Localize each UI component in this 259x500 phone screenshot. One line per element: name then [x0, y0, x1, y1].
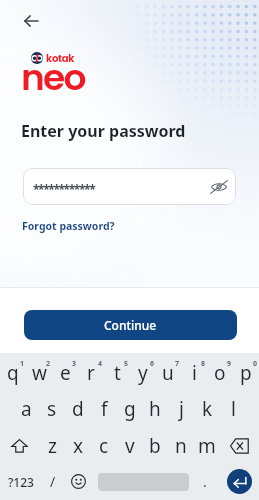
button[interactable]: ************ — [23, 168, 236, 205]
button[interactable]: h — [142, 390, 168, 427]
staticText: Enter your password — [21, 120, 186, 142]
staticText: b — [149, 433, 161, 459]
button[interactable]: / — [42, 463, 63, 500]
staticText: / — [50, 472, 56, 491]
button[interactable]: Enter — [219, 463, 259, 500]
staticText: o — [214, 360, 226, 386]
staticText: 9 — [227, 359, 232, 369]
button[interactable]: k — [194, 390, 220, 427]
button[interactable]: t — [104, 354, 130, 391]
staticText: u — [162, 360, 174, 386]
staticText: 5 — [124, 359, 129, 369]
button[interactable]: z — [39, 427, 65, 464]
staticText: f — [101, 396, 108, 422]
button[interactable]: s — [39, 390, 65, 427]
staticText: 6 — [150, 359, 155, 369]
staticText: g — [124, 396, 136, 422]
button[interactable]: Shift — [0, 427, 39, 464]
staticText: j — [179, 396, 184, 422]
staticText: l — [231, 396, 236, 422]
staticText: 3 — [72, 359, 77, 369]
button[interactable]: f — [91, 390, 117, 427]
button[interactable]: . — [194, 463, 215, 500]
staticText: 1 — [20, 359, 25, 369]
staticText: . — [203, 472, 207, 491]
button[interactable]: x — [65, 427, 91, 464]
button[interactable]: l — [220, 390, 246, 427]
staticText: y — [138, 360, 148, 386]
button[interactable]: Show password — [209, 177, 229, 197]
staticText: a — [21, 396, 32, 422]
staticText: 7 — [175, 359, 180, 369]
button[interactable]: j — [168, 390, 194, 427]
staticText: z — [48, 433, 57, 459]
button[interactable]: y — [130, 354, 156, 391]
button[interactable]: Forgot password? — [22, 219, 115, 233]
staticText: i — [192, 360, 197, 386]
button[interactable]: Back — [10, 5, 52, 37]
staticText: ************ — [33, 181, 95, 197]
button[interactable]: Space — [93, 463, 193, 500]
staticText: ?123 — [8, 474, 34, 490]
button[interactable]: e — [52, 354, 78, 391]
staticText: Continue — [104, 317, 157, 333]
button[interactable]: o — [207, 354, 233, 391]
staticText: q — [7, 360, 19, 386]
staticText: w — [32, 360, 47, 386]
staticText: n — [175, 433, 187, 459]
staticText: r — [87, 360, 95, 386]
button[interactable]: m — [194, 427, 220, 464]
staticText: c — [99, 433, 109, 459]
button[interactable]: Emoji — [65, 463, 91, 500]
staticText: t — [114, 360, 121, 386]
staticText: e — [60, 360, 71, 386]
button[interactable]: i — [181, 354, 207, 391]
button[interactable]: v — [117, 427, 143, 464]
staticText: p — [240, 360, 252, 386]
button[interactable]: w — [26, 354, 52, 391]
staticText: s — [47, 396, 57, 422]
button[interactable]: Backspace — [220, 427, 259, 464]
staticText: 2 — [46, 359, 51, 369]
staticText: h — [149, 396, 161, 422]
staticText: k — [202, 396, 213, 422]
button[interactable]: ?123 — [0, 463, 42, 500]
staticText: m — [198, 433, 216, 459]
button[interactable]: r — [78, 354, 104, 391]
button[interactable]: p — [233, 354, 259, 391]
button[interactable]: b — [142, 427, 168, 464]
staticText: 4 — [98, 359, 103, 369]
button[interactable]: d — [65, 390, 91, 427]
button[interactable]: c — [91, 427, 117, 464]
staticText: 8 — [201, 359, 206, 369]
button[interactable]: a — [13, 390, 39, 427]
button[interactable]: q — [0, 354, 26, 391]
staticText: 0 — [253, 359, 258, 369]
staticText: neo — [21, 52, 85, 102]
staticText: x — [73, 433, 84, 459]
button[interactable]: Continue — [24, 310, 237, 340]
button[interactable]: u — [155, 354, 181, 391]
button[interactable]: g — [117, 390, 143, 427]
staticText: d — [72, 396, 84, 422]
button[interactable]: n — [168, 427, 194, 464]
staticText: kotak — [46, 51, 75, 65]
staticText: v — [125, 433, 135, 459]
